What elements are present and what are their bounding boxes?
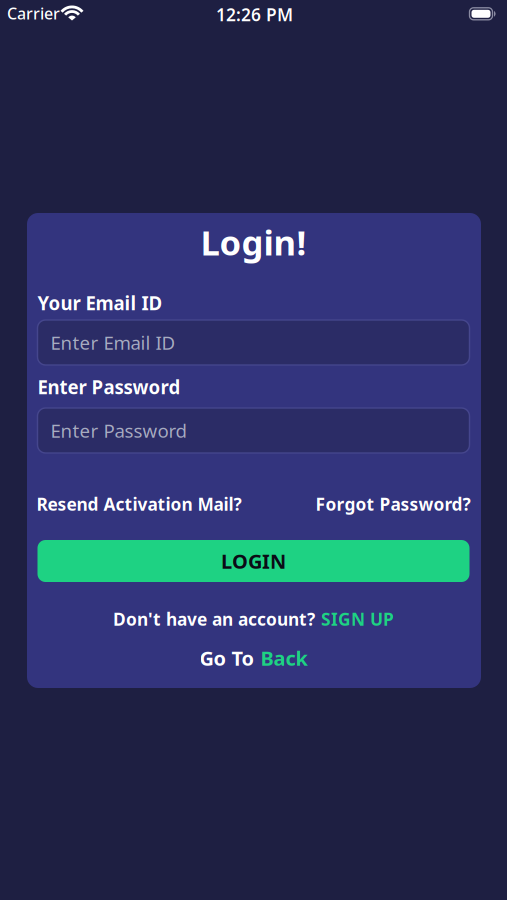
staticText: SIGN UP bbox=[321, 607, 394, 630]
staticText: LOGIN bbox=[221, 548, 286, 574]
staticText: Carrier bbox=[7, 3, 60, 24]
staticText: Enter Password bbox=[50, 418, 186, 443]
staticText: Login! bbox=[200, 219, 306, 265]
textField[interactable]: Enter Password bbox=[50, 418, 469, 443]
staticText: Your Email ID bbox=[37, 291, 162, 315]
staticText: Enter Password bbox=[50, 418, 186, 443]
staticText: 12:26 PM bbox=[216, 3, 293, 26]
staticText: Back bbox=[260, 645, 307, 671]
textField[interactable]: Enter Email ID bbox=[50, 330, 469, 355]
staticText: Enter Password bbox=[37, 375, 180, 399]
staticText: Forgot Password? bbox=[315, 492, 470, 515]
staticText: Don't have an account? bbox=[113, 607, 315, 630]
button[interactable]: Resend Activation Mail? bbox=[36, 492, 241, 515]
button[interactable]: Back bbox=[260, 645, 307, 671]
button[interactable]: LOGIN bbox=[37, 540, 469, 582]
button[interactable]: Forgot Password? bbox=[315, 492, 470, 515]
staticText: Go To bbox=[199, 645, 254, 671]
staticText: Enter Email ID bbox=[50, 330, 175, 355]
staticText: Resend Activation Mail? bbox=[36, 492, 241, 515]
staticText: Enter Email ID bbox=[50, 330, 175, 355]
button[interactable]: SIGN UP bbox=[321, 607, 394, 630]
